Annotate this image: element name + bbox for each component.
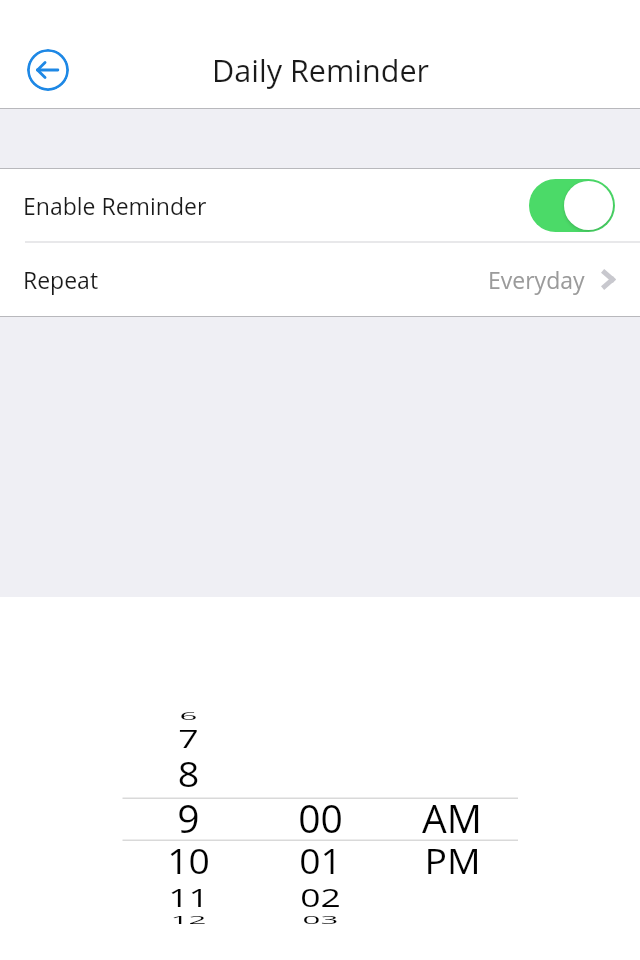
button[interactable]: Enable Reminder [0, 169, 640, 241]
staticText: AM [422, 791, 482, 844]
staticText: Daily Reminder [212, 49, 429, 91]
staticText: 03 [302, 911, 338, 927]
button[interactable]: time column [386, 700, 518, 940]
staticText: 6 [179, 707, 198, 723]
staticText: 7 [178, 720, 199, 755]
staticText: 10 [167, 836, 210, 884]
staticText: Repeat [23, 264, 99, 295]
staticText: 11 [168, 879, 209, 914]
button[interactable]: Enable Reminder toggle [529, 179, 615, 232]
staticText: PM [424, 836, 481, 884]
staticText: 8 [177, 750, 200, 797]
staticText: Enable Reminder [23, 190, 207, 221]
staticText: 9 [177, 791, 200, 844]
button[interactable]: time column [254, 700, 386, 940]
staticText: 02 [300, 879, 341, 914]
staticText: Everyday [488, 264, 585, 295]
staticText: 01 [299, 836, 342, 884]
button[interactable]: time column [122, 700, 254, 940]
staticText: 12 [170, 911, 206, 927]
staticText: 00 [298, 791, 343, 844]
button[interactable]: Back [27, 49, 69, 91]
button[interactable]: Repeat [0, 243, 640, 316]
